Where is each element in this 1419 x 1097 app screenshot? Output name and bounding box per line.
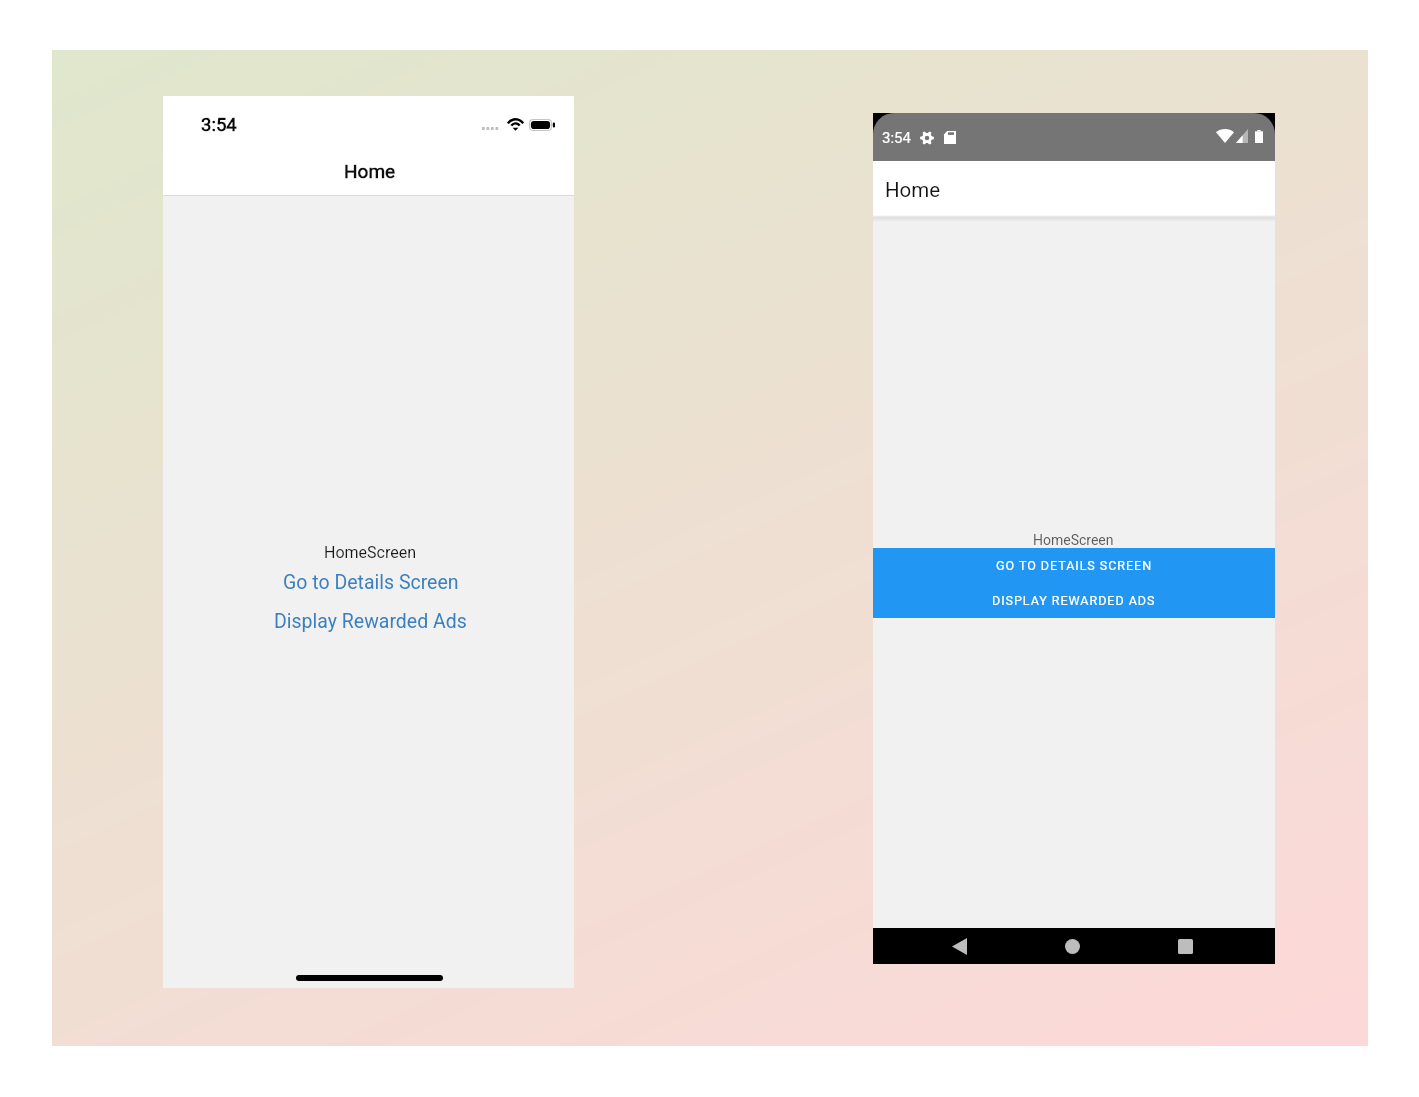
staticText: Home: [885, 178, 941, 202]
button[interactable]: Go to Details Screen: [283, 571, 459, 594]
staticText: HomeScreen: [1033, 532, 1114, 548]
button[interactable]: Home: [1050, 928, 1094, 964]
staticText: HomeScreen: [324, 543, 417, 562]
staticText: Go to Details Screen: [283, 571, 459, 594]
staticText: Home: [344, 160, 396, 182]
button[interactable]: Display Rewarded Ads: [274, 610, 467, 633]
staticText: DISPLAY REWARDED ADS: [992, 593, 1156, 608]
staticText: 3:54: [882, 129, 911, 147]
button[interactable]: Back: [937, 928, 981, 964]
staticText: Display Rewarded Ads: [274, 610, 467, 633]
staticText: 3:54: [201, 114, 237, 136]
button[interactable]: GO TO DETAILS SCREEN: [873, 548, 1275, 583]
button[interactable]: DISPLAY REWARDED ADS: [873, 583, 1275, 618]
button[interactable]: Recents: [1163, 928, 1207, 964]
staticText: GO TO DETAILS SCREEN: [996, 558, 1153, 573]
